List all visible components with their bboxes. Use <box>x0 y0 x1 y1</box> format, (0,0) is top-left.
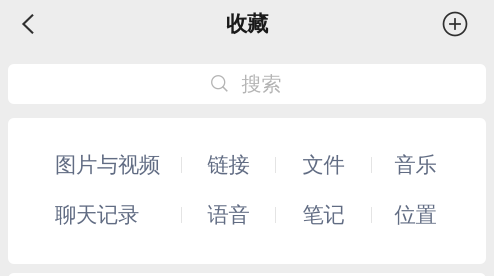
staticText: 搜索 <box>241 72 281 96</box>
button[interactable]: 语音 <box>182 190 275 240</box>
staticText: 笔记 <box>302 202 344 228</box>
staticText: 聊天记录 <box>55 202 139 228</box>
staticText: 音乐 <box>394 152 436 178</box>
staticText: 图片与视频 <box>55 152 160 178</box>
button[interactable]: 搜索 <box>8 64 486 104</box>
button[interactable]: 图片与视频 <box>55 140 181 190</box>
staticText: 收藏 <box>226 11 268 37</box>
button[interactable]: Back <box>6 0 50 48</box>
button[interactable]: 文件 <box>276 140 371 190</box>
button[interactable]: 音乐 <box>372 140 459 190</box>
staticText: 链接 <box>207 152 249 178</box>
staticText: 语音 <box>207 202 249 228</box>
button[interactable]: Add <box>433 0 477 48</box>
staticText: 文件 <box>302 152 344 178</box>
button[interactable]: 笔记 <box>276 190 371 240</box>
staticText: 位置 <box>394 202 436 228</box>
button[interactable]: 位置 <box>372 190 459 240</box>
button[interactable]: 链接 <box>182 140 275 190</box>
button[interactable]: 聊天记录 <box>55 190 181 240</box>
